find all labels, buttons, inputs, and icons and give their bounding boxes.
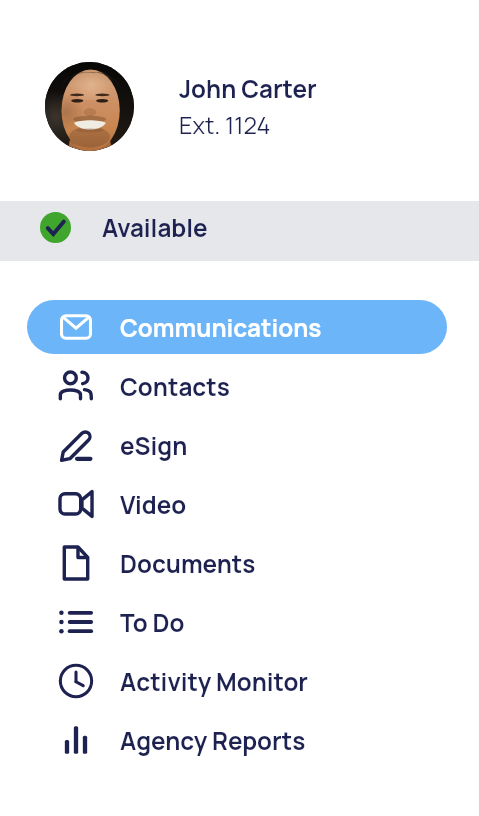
staticText: Documents (120, 547, 256, 580)
staticText: John Carter (179, 72, 317, 105)
staticText: Agency Reports (120, 724, 306, 757)
button[interactable]: Contacts (27, 359, 447, 413)
staticText: Activity Monitor (120, 665, 308, 698)
button[interactable]: Available (0, 201, 479, 261)
button[interactable]: Agency Reports (27, 713, 447, 767)
staticText: Available (102, 211, 208, 244)
staticText: To Do (120, 606, 185, 639)
staticText: Video (120, 488, 187, 521)
button[interactable]: eSign (27, 418, 447, 472)
button[interactable]: Activity Monitor (27, 654, 447, 708)
staticText: Ext. 1124 (179, 109, 271, 141)
staticText: eSign (120, 429, 188, 462)
staticText: Communications (120, 311, 322, 344)
button[interactable]: To Do (27, 595, 447, 649)
button[interactable]: Communications (27, 300, 447, 354)
staticText: Contacts (120, 370, 230, 403)
button[interactable]: Documents (27, 536, 447, 590)
button[interactable]: Video (27, 477, 447, 531)
